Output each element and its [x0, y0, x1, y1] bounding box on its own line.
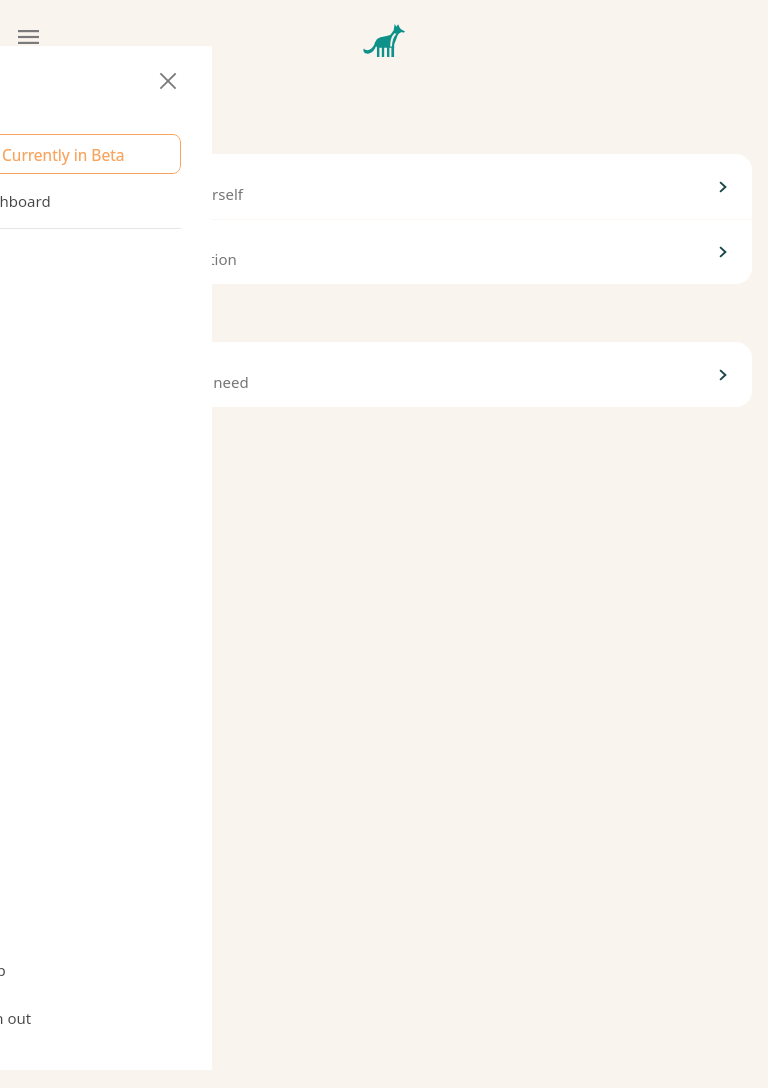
button[interactable]: Help	[0, 946, 212, 994]
staticText: Anything else you need	[84, 372, 719, 392]
staticText: Dashboard	[0, 191, 51, 211]
button[interactable]: Sign out	[0, 994, 212, 1042]
staticText: Sign out	[0, 1008, 32, 1028]
button[interactable]: Tell us about yourself	[16, 154, 752, 219]
staticText: Help	[0, 960, 6, 980]
button[interactable]: Currently in Beta	[0, 134, 181, 174]
button[interactable]: Complete application	[16, 220, 752, 284]
staticText: Complete application	[87, 249, 719, 269]
button[interactable]: Anything else you need	[16, 342, 752, 407]
button[interactable]: Close navigation menu	[146, 59, 190, 103]
button[interactable]: Dashboard	[0, 177, 212, 225]
staticText: Tell us about yourself	[93, 184, 719, 204]
staticText: Currently in Beta	[2, 144, 125, 165]
button[interactable]: Open navigation menu	[6, 15, 50, 59]
